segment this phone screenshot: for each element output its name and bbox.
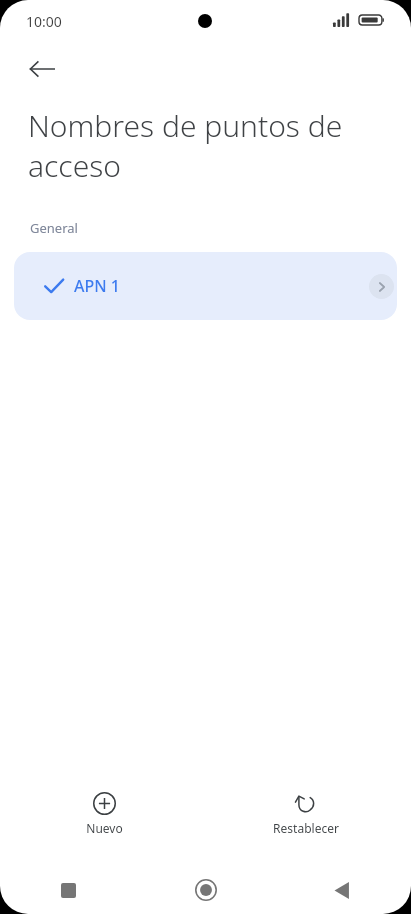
button[interactable]: Nuevo [64,792,144,836]
button[interactable]: Edit APN 1 [369,274,394,299]
staticText: Nombres de puntos de acceso [28,105,343,186]
button[interactable]: Restablecer [260,792,352,836]
staticText: APN 1 [74,275,120,297]
staticText: Nuevo [86,820,123,836]
button[interactable]: Home [137,866,274,914]
button[interactable]: Recent apps [0,866,137,914]
button[interactable]: APN 1 [14,252,397,320]
staticText: Restablecer [273,820,339,836]
staticText: General [30,219,78,237]
button[interactable]: Back [18,45,66,93]
button[interactable]: Back [274,866,411,914]
staticText: 10:00 [26,12,62,31]
